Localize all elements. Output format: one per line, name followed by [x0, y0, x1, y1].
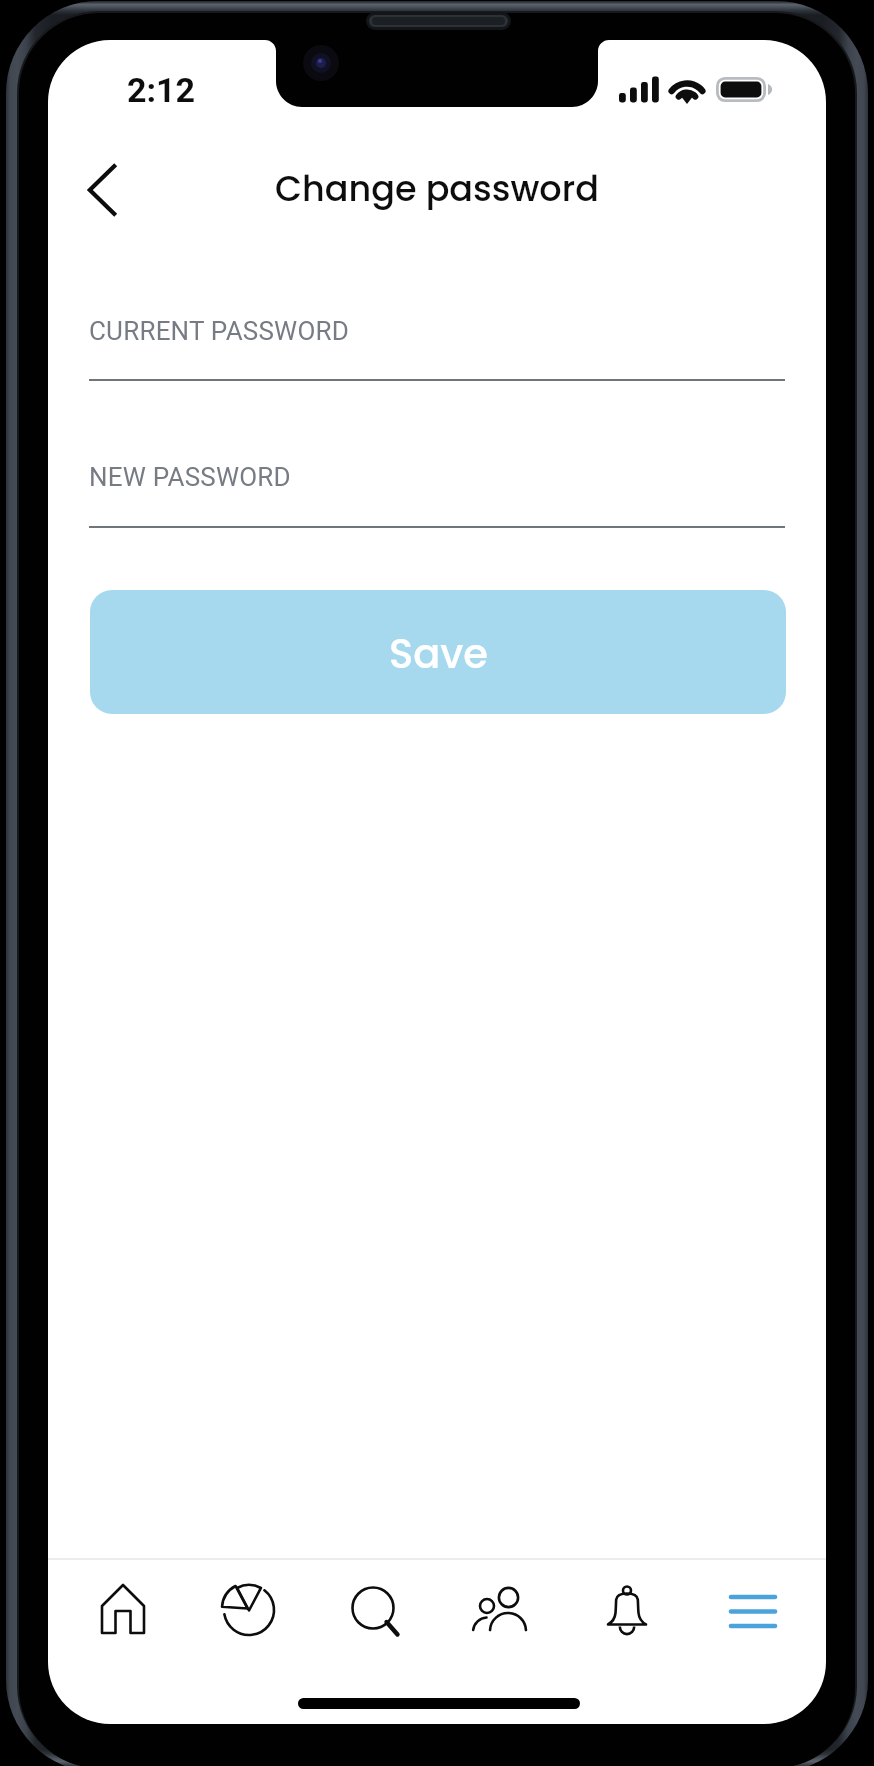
staticText: Change password — [275, 164, 599, 213]
staticText: 2:12 — [127, 70, 196, 110]
button[interactable]: Back — [66, 148, 138, 232]
button[interactable]: Notifications — [569, 1556, 685, 1664]
staticText: Save — [389, 626, 488, 682]
button[interactable]: Statistics — [191, 1556, 307, 1664]
staticText: CURRENT PASSWORD — [89, 316, 349, 346]
staticText: NEW PASSWORD — [89, 462, 291, 492]
button[interactable]: Home — [65, 1556, 181, 1664]
button[interactable]: Contacts — [441, 1556, 557, 1664]
button[interactable]: Save — [90, 590, 786, 714]
button[interactable]: Menu — [695, 1556, 811, 1664]
button[interactable]: Search — [315, 1556, 431, 1664]
